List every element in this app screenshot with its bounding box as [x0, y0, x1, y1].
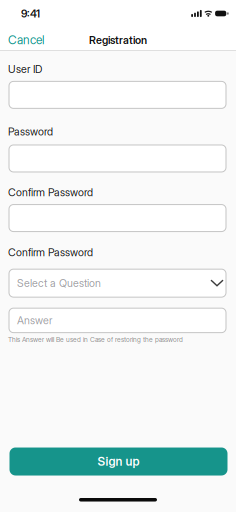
button[interactable]: Select a Question — [8, 269, 228, 297]
staticText: Registration — [89, 34, 147, 46]
staticText: User ID — [8, 63, 42, 75]
button[interactable]: Confirm Password — [8, 205, 228, 232]
staticText: Sign up — [97, 454, 139, 469]
staticText: Answer — [17, 314, 52, 327]
button[interactable]: Password — [8, 145, 228, 172]
staticText: 9:41 — [21, 7, 40, 20]
staticText: Confirm Password — [8, 246, 93, 259]
staticText: This Answer will Be used in Case of rest… — [8, 336, 183, 343]
button[interactable]: Cancel — [0, 33, 44, 47]
staticText: Confirm Password — [8, 186, 93, 199]
button[interactable]: User ID — [8, 81, 228, 108]
button[interactable]: Sign up — [9, 447, 227, 475]
staticText: Cancel — [8, 33, 44, 47]
staticText: Select a Question — [17, 277, 101, 289]
button[interactable]: Answer — [8, 308, 228, 333]
staticText: Password — [8, 125, 53, 138]
